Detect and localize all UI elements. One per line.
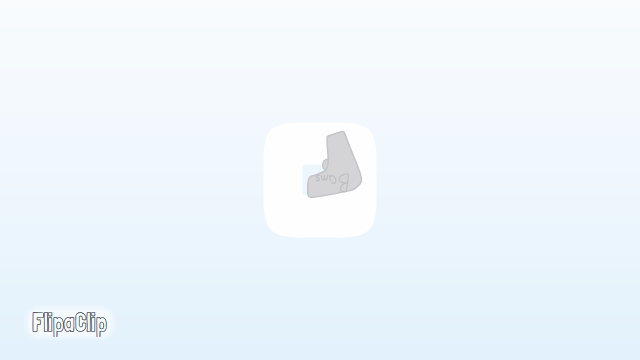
staticText: FlipaClip [32, 306, 117, 338]
staticText: FlipaClip [32, 306, 117, 338]
staticText: FlipaClip [32, 306, 117, 338]
staticText: FlipaClip [32, 306, 117, 338]
